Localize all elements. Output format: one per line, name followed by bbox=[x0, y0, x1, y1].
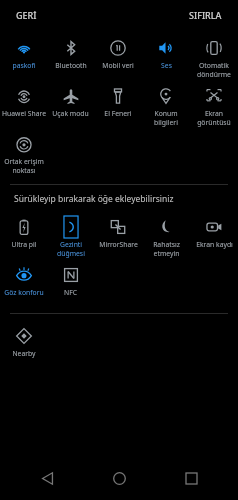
other: Mobil veri bbox=[110, 40, 126, 56]
button[interactable]: Home bbox=[97, 456, 141, 500]
button[interactable]: Ekran görüntüsü bbox=[190, 82, 238, 130]
other: paskofi bbox=[16, 40, 32, 56]
button[interactable]: Back bbox=[25, 456, 69, 500]
button[interactable]: Mobil veri bbox=[94, 34, 142, 82]
button[interactable]: Bluetooth bbox=[47, 34, 94, 82]
staticText: Gezinti düğmesi bbox=[57, 240, 85, 258]
other: Nearby bbox=[16, 328, 32, 344]
other: Ekran kaydı bbox=[206, 219, 222, 235]
button[interactable]: Recents bbox=[169, 456, 213, 500]
staticText: Konum bilgileri bbox=[142, 109, 190, 127]
staticText: SIFIRLA bbox=[189, 9, 222, 21]
staticText: Ultra pil bbox=[11, 240, 37, 249]
other: MirrorShare bbox=[110, 219, 126, 235]
staticText: paskofi bbox=[12, 61, 36, 70]
button[interactable]: Ses bbox=[142, 34, 190, 82]
staticText: Ekran kaydı bbox=[196, 240, 233, 249]
staticText: Ses bbox=[161, 61, 172, 70]
other: Huawei Share bbox=[16, 88, 32, 104]
other: Ekran görüntüsü bbox=[206, 88, 222, 104]
staticText: Ekran görüntüsü bbox=[197, 109, 231, 127]
staticText: Nearby bbox=[12, 349, 36, 358]
other: Ultra pil bbox=[16, 219, 32, 235]
other: Konum bilgileri bbox=[158, 88, 174, 104]
other: Rahatsız etmeyin bbox=[158, 219, 174, 235]
staticText: Ortak erişim noktası bbox=[4, 157, 44, 175]
button[interactable]: Nearby bbox=[0, 322, 47, 370]
button[interactable]: Ekran kaydı bbox=[190, 213, 238, 261]
button[interactable]: Ultra pil bbox=[0, 213, 47, 261]
other: Uçak modu bbox=[63, 88, 79, 104]
button[interactable]: GERİ bbox=[12, 5, 41, 25]
button[interactable]: NFC bbox=[47, 261, 94, 309]
staticText: El Feneri bbox=[104, 109, 132, 118]
button[interactable]: Huawei Share bbox=[0, 82, 47, 130]
other: NFC bbox=[63, 267, 79, 283]
staticText: Sürükleyip bırakarak öğe ekleyebilirsini… bbox=[14, 193, 174, 205]
other: Ses bbox=[158, 40, 174, 56]
staticText: Otomatik döndürme bbox=[197, 61, 231, 79]
other: Bluetooth bbox=[63, 40, 79, 56]
staticText: Göz konforu bbox=[4, 288, 44, 297]
staticText: MirrorShare bbox=[99, 240, 138, 249]
staticText: Mobil veri bbox=[102, 61, 134, 70]
button[interactable]: MirrorShare bbox=[94, 213, 142, 261]
other: Gezinti düğmesi bbox=[63, 219, 79, 235]
button[interactable]: Ortak erişim noktası bbox=[0, 130, 47, 178]
other: Göz konforu bbox=[16, 267, 32, 283]
other: Ortak erişim noktası bbox=[16, 136, 32, 152]
button[interactable]: Uçak modu bbox=[47, 82, 94, 130]
staticText: Uçak modu bbox=[52, 109, 89, 118]
staticText: Bluetooth bbox=[55, 61, 87, 70]
other: Otomatik döndürme bbox=[206, 40, 222, 56]
button[interactable]: Otomatik döndürme bbox=[190, 34, 238, 82]
button[interactable]: El Feneri bbox=[94, 82, 142, 130]
staticText: Rahatsız etmeyin bbox=[153, 240, 180, 258]
staticText: NFC bbox=[64, 288, 77, 297]
other: El Feneri bbox=[110, 88, 126, 104]
button[interactable]: Rahatsız etmeyin bbox=[142, 213, 190, 261]
staticText: GERİ bbox=[16, 9, 37, 21]
button[interactable]: Göz konforu bbox=[0, 261, 47, 309]
button[interactable]: SIFIRLA bbox=[185, 5, 226, 25]
staticText: Huawei Share bbox=[2, 109, 46, 118]
button[interactable]: Gezinti düğmesi bbox=[47, 213, 94, 261]
button[interactable]: paskofi bbox=[0, 34, 47, 82]
button[interactable]: Konum bilgileri bbox=[142, 82, 190, 130]
